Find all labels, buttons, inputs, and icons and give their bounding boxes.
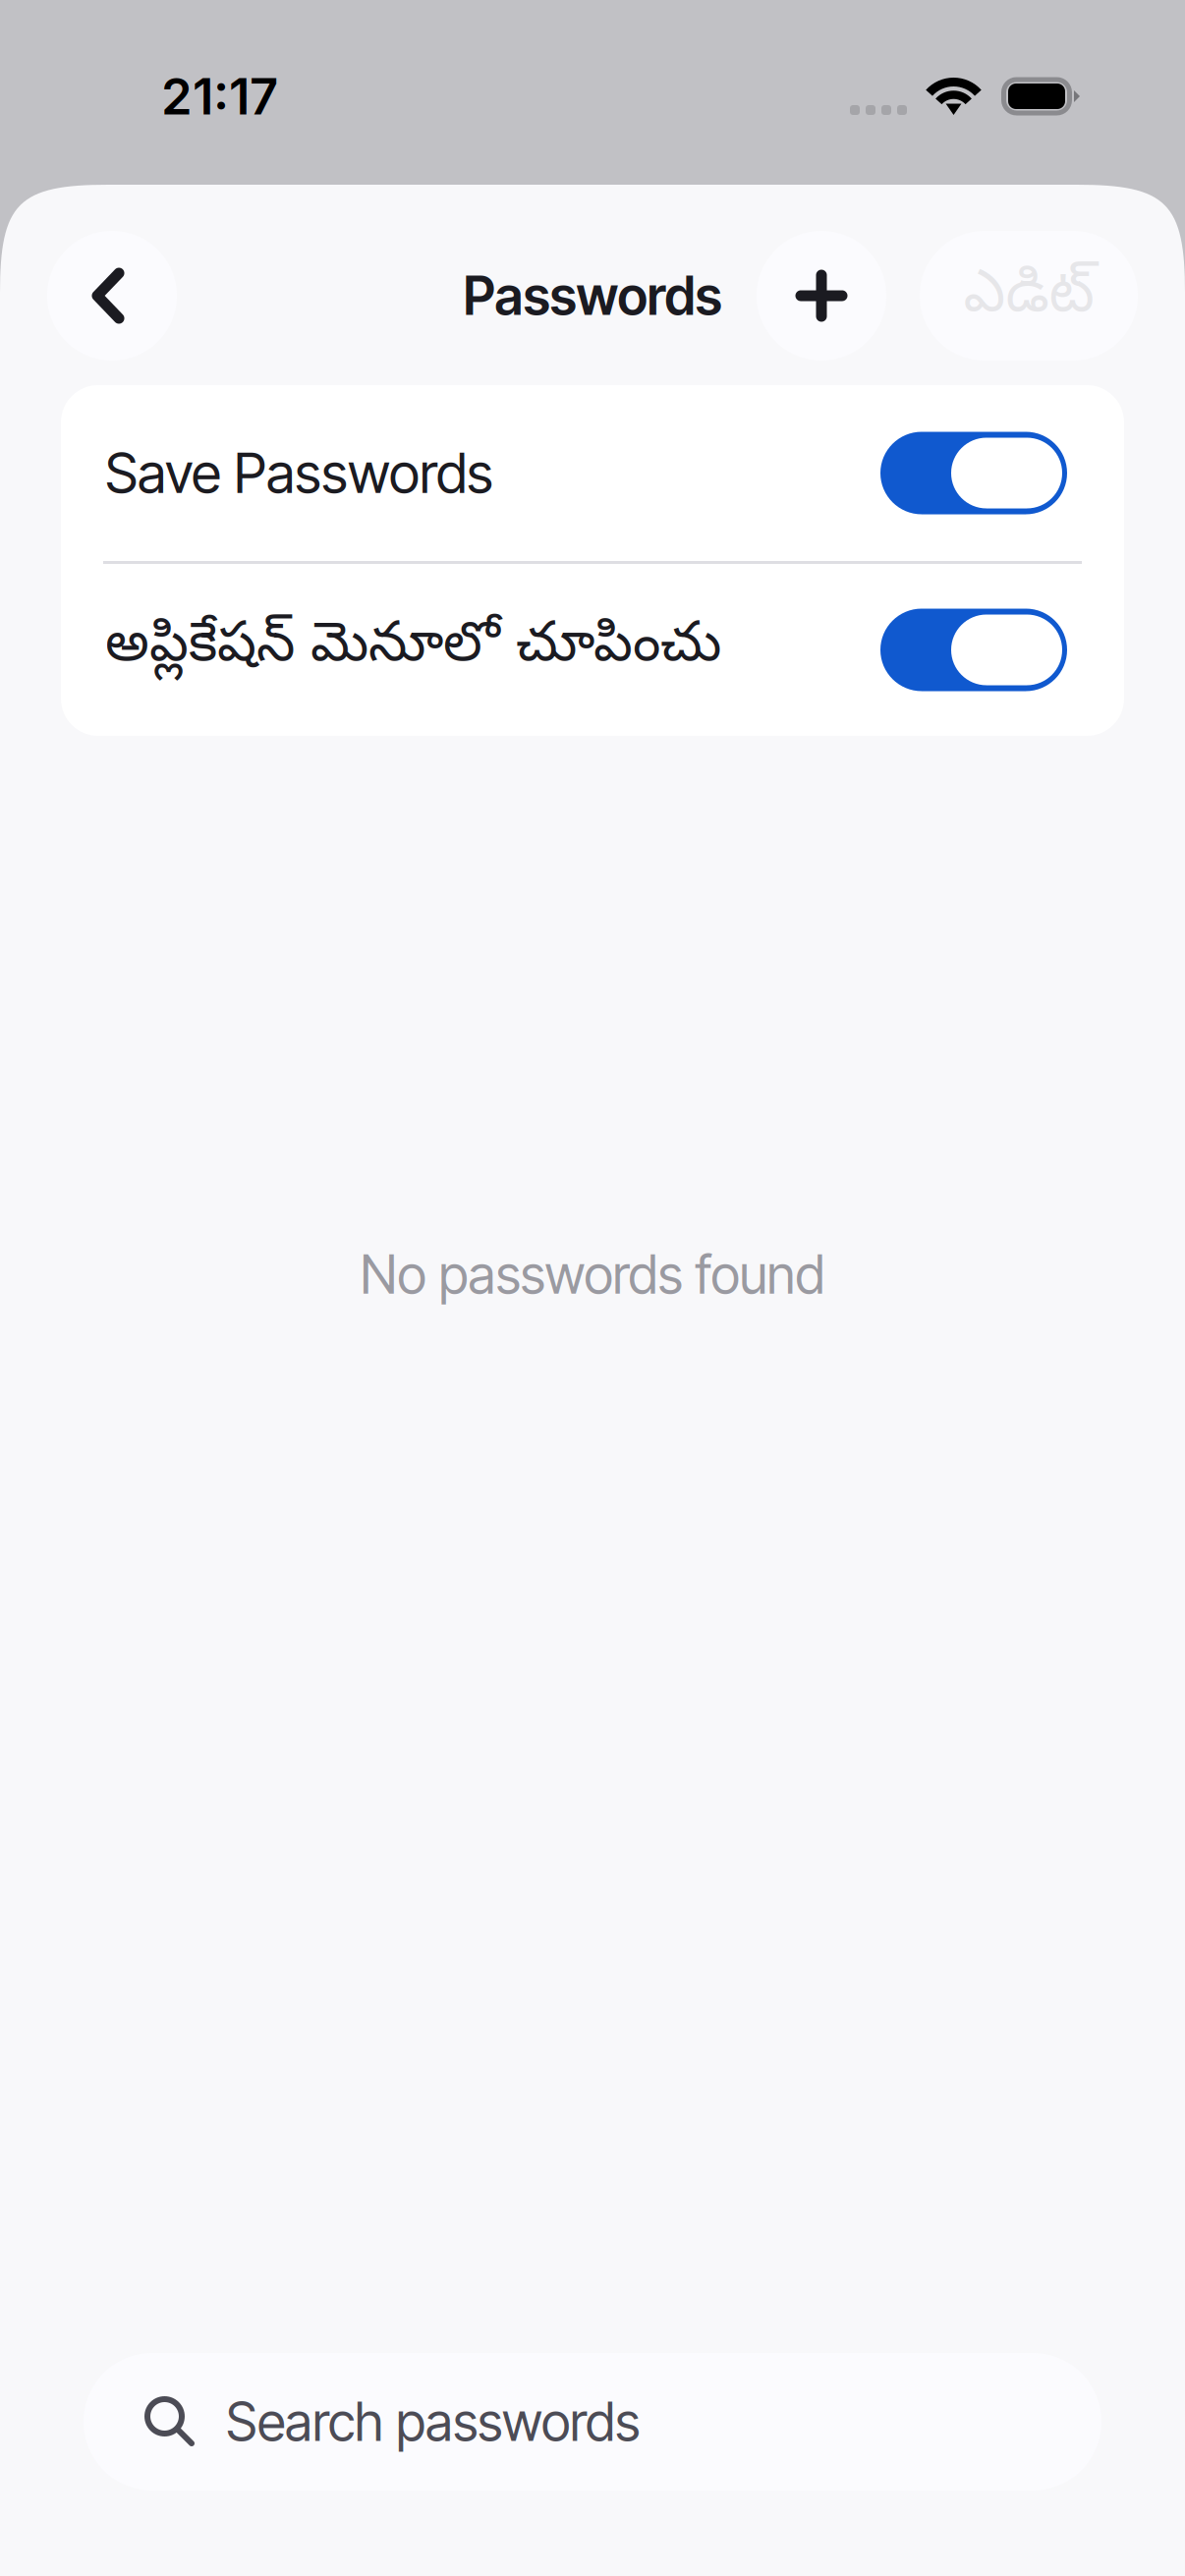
button[interactable]: Back [47, 231, 177, 361]
staticText: 21:17 [161, 66, 278, 126]
staticText: No passwords found [360, 1243, 825, 1306]
button[interactable]: Add password [757, 231, 886, 361]
button[interactable]: అప్లికేషన్ మెనూలో చూపించు [61, 564, 1124, 736]
button[interactable]: Search passwords [84, 2353, 1101, 2491]
staticText: Search passwords [226, 2390, 640, 2453]
staticText: అప్లికేషన్ మెనూలో చూపించు [105, 613, 721, 687]
staticText: Passwords [463, 264, 722, 327]
button[interactable]: ఎడిట్ [920, 231, 1138, 361]
staticText: Save Passwords [105, 440, 493, 506]
button[interactable]: Save Passwords [61, 385, 1124, 561]
staticText: ఎడిట్ [963, 260, 1094, 339]
